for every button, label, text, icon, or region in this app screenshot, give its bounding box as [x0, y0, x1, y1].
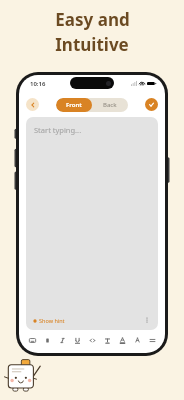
button[interactable]: Underline — [71, 334, 83, 346]
staticText: Back — [103, 101, 117, 109]
staticText: Intuitive — [55, 33, 129, 56]
button[interactable]: Save — [145, 98, 158, 111]
button[interactable]: More options — [142, 315, 152, 325]
button[interactable]: Back — [26, 98, 39, 111]
button[interactable]: Keyboard — [26, 334, 38, 346]
button[interactable]: Bold — [41, 334, 53, 346]
button[interactable]: Back — [92, 98, 128, 112]
button[interactable]: Highlight — [101, 334, 113, 346]
staticText: 10:16 — [30, 80, 46, 88]
staticText: Front — [66, 101, 82, 109]
staticText: Start typing... — [34, 125, 82, 135]
staticText: Show hint — [39, 317, 65, 324]
button[interactable]: More — [146, 334, 158, 346]
button[interactable]: Front — [56, 98, 92, 112]
button[interactable]: Text color — [116, 334, 128, 346]
button[interactable]: Italic — [56, 334, 68, 346]
staticText: Easy and — [55, 8, 130, 31]
button[interactable]: Code — [86, 334, 98, 346]
button[interactable]: Show hint — [32, 316, 66, 325]
button[interactable]: Fill color — [131, 334, 143, 346]
